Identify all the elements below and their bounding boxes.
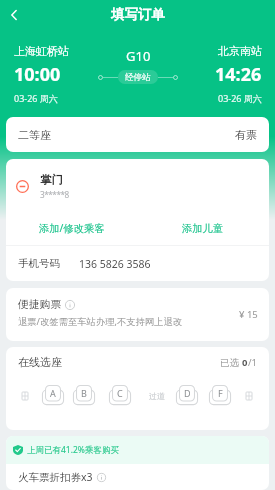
- staticText: 有票: [235, 128, 257, 142]
- staticText: 在线选座: [18, 355, 62, 369]
- staticText: 火车票折扣券x3: [18, 470, 93, 484]
- staticText: D: [184, 387, 191, 399]
- button[interactable]: 便捷购票: [6, 288, 269, 341]
- button[interactable]: D: [176, 385, 198, 405]
- button[interactable]: 火车票折扣券x3: [6, 464, 269, 490]
- button[interactable]: 添加/修改乘客: [6, 216, 137, 240]
- button[interactable]: Remove passenger: [6, 171, 80, 201]
- staticText: 经停站: [125, 72, 151, 83]
- staticText: 添加/修改乘客: [39, 221, 105, 235]
- staticText: 添加儿童: [182, 222, 224, 235]
- staticText: 上海虹桥站: [14, 44, 69, 58]
- button[interactable]: B: [73, 385, 95, 405]
- staticText: 3*****8: [40, 189, 69, 200]
- staticText: F: [218, 387, 223, 399]
- staticText: 二等座: [18, 128, 51, 142]
- staticText: 填写订单: [111, 6, 165, 23]
- button[interactable]: 经停站: [118, 70, 158, 84]
- staticText: B: [81, 387, 87, 399]
- staticText: 北京南站: [218, 44, 262, 58]
- other: Remove passenger: [16, 180, 29, 193]
- staticText: 过道: [149, 391, 165, 401]
- staticText: 退票/改签需至车站办理,不支持网上退改: [18, 315, 182, 328]
- staticText: G10: [126, 47, 151, 65]
- button[interactable]: Back: [0, 1, 28, 29]
- staticText: 已选: [220, 356, 242, 369]
- staticText: 掌门: [40, 173, 63, 187]
- button[interactable]: F: [209, 385, 231, 405]
- button[interactable]: A: [42, 385, 64, 405]
- staticText: 便捷购票: [18, 298, 62, 312]
- staticText: 03-26 周六: [14, 92, 58, 104]
- staticText: /1: [248, 356, 257, 369]
- button[interactable]: 添加儿童: [137, 216, 269, 240]
- button[interactable]: 手机号码: [6, 246, 269, 281]
- staticText: 10:00: [14, 62, 61, 87]
- staticText: A: [50, 387, 56, 399]
- button[interactable]: C: [109, 385, 131, 405]
- staticText: 上周已有41.2%乘客购买: [27, 444, 119, 456]
- staticText: 14:26: [215, 62, 262, 87]
- staticText: 手机号码: [18, 257, 60, 270]
- staticText: ¥ 15: [239, 308, 258, 321]
- staticText: 0: [242, 356, 248, 369]
- button[interactable]: 二等座: [6, 117, 269, 152]
- staticText: C: [117, 387, 123, 399]
- staticText: 136 5826 3586: [79, 257, 151, 271]
- staticText: 03-26 周六: [218, 92, 262, 104]
